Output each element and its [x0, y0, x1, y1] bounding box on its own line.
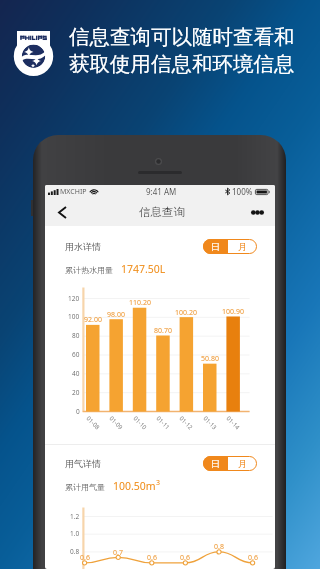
staticText: 01-09	[107, 414, 124, 431]
staticText: 0.8	[214, 542, 224, 552]
button[interactable]: 月	[228, 456, 257, 471]
staticText: 98.00	[107, 310, 125, 320]
staticText: 100	[68, 312, 80, 321]
button[interactable]: Back	[51, 201, 73, 223]
button[interactable]: More options	[245, 200, 269, 224]
staticText: 累计热水用量	[65, 265, 113, 275]
staticText: 100.90	[222, 307, 244, 317]
staticText: 日	[211, 458, 220, 469]
staticText: 0.8	[70, 547, 80, 556]
staticText: 获取使用信息和环境信息	[69, 51, 295, 77]
staticText: 01-14	[224, 414, 241, 431]
staticText: 用水详情	[65, 241, 101, 252]
staticText: 100.20	[175, 308, 197, 318]
staticText: 110.20	[129, 298, 151, 308]
staticText: 信息查询可以随时查看和	[69, 24, 295, 50]
staticText: 日	[211, 241, 220, 252]
staticText: 40	[72, 369, 80, 378]
button[interactable]: 日	[203, 456, 228, 471]
staticText: 累计用气量	[65, 482, 105, 492]
staticText: MXCHIP	[60, 187, 87, 197]
button[interactable]: 月	[228, 239, 257, 254]
staticText: 50.80	[201, 354, 219, 364]
staticText: 0.6	[180, 553, 190, 563]
staticText: 80.70	[154, 326, 172, 336]
staticText: 0.7	[113, 548, 123, 558]
staticText: 月	[238, 458, 247, 469]
staticText: 0.6	[248, 553, 258, 563]
staticText: 9:41 AM	[146, 186, 177, 197]
staticText: 月	[238, 241, 247, 252]
staticText: 01-13	[201, 414, 218, 431]
staticText: 01-10	[131, 414, 148, 431]
staticText: 信息查询	[139, 205, 185, 219]
staticText: 20	[72, 388, 80, 397]
staticText: 1747.50L	[121, 262, 166, 276]
staticText: 60	[72, 350, 80, 359]
staticText: 01-08	[84, 414, 101, 431]
staticText: 1.2	[70, 512, 80, 521]
staticText: 100%	[232, 186, 253, 197]
staticText: 0.6	[80, 553, 90, 563]
staticText: 0	[76, 407, 80, 416]
staticText: 01-12	[177, 414, 194, 431]
staticText: 100.50m	[113, 479, 156, 493]
staticText: 3	[156, 478, 161, 488]
staticText: 80	[72, 331, 80, 340]
staticText: 0.6	[147, 553, 157, 563]
staticText: 92.00	[84, 315, 102, 325]
button[interactable]: 日	[203, 239, 228, 254]
staticText: 用气详情	[65, 458, 101, 469]
staticText: 01-11	[154, 414, 171, 431]
staticText: 120	[68, 294, 80, 303]
staticText: 1.0	[70, 529, 80, 538]
